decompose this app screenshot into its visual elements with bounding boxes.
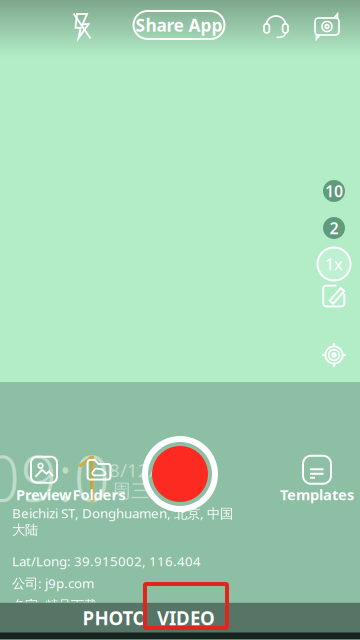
staticText: Beichizi ST, Donghuamen, 北京, 中国 [12,504,233,522]
staticText: VIDEO [157,606,215,630]
button[interactable]: Preview [16,456,72,504]
button[interactable]: Share App [133,11,224,39]
button[interactable]: VIDEO [156,602,216,633]
staticText: 周三 [112,479,150,502]
button[interactable]: Flash off [62,6,102,46]
staticText: Templates [280,485,354,504]
staticText: 2 [329,217,338,239]
button[interactable]: Support [256,6,296,46]
staticText: 10 [325,180,343,202]
button[interactable]: 2 [323,217,345,239]
button[interactable]: Switch camera [307,6,347,46]
staticText: 公司: j9p.com [12,574,94,592]
staticText: 1 [72,434,109,519]
staticText: 大陆 [12,522,38,538]
button[interactable]: Templates [280,456,354,504]
button[interactable]: Record [145,439,215,509]
button[interactable]: PHOTO [83,602,147,633]
staticText: 名字: 精品下载 [12,596,97,614]
staticText: 8/12/1 [109,458,167,482]
staticText: Preview [16,485,72,504]
button[interactable]: 10 [323,180,345,202]
staticText: 09:0 [0,434,110,519]
button[interactable]: Edit watermark [319,281,349,311]
button[interactable]: Focus lock [319,340,349,370]
staticText: Lat/Long: 39.915002, 116.404 [12,552,201,570]
button[interactable]: 1x [317,247,350,280]
staticText: Folders [72,485,125,504]
staticText: Share App [135,13,222,36]
button[interactable]: Folders [72,456,125,504]
staticText: PHOTO [82,606,147,630]
staticText: 1x [325,253,343,275]
